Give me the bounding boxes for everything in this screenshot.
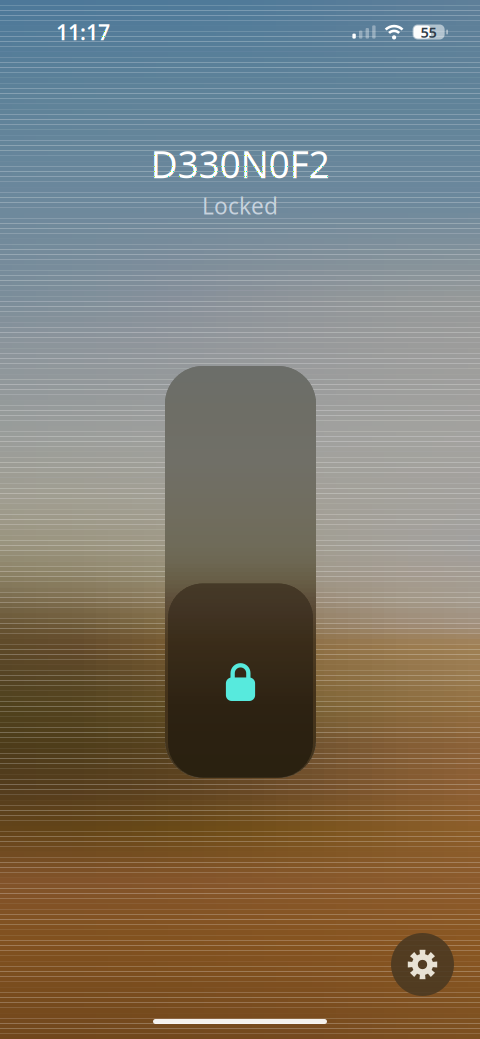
staticText: Locked [202,191,278,221]
button[interactable]: Locked — slide to unlock [165,366,316,778]
button[interactable]: Settings [391,933,454,996]
staticText: 11:17 [56,18,110,46]
staticText: D330N0F2 [150,139,329,189]
staticText: 55 [421,22,437,42]
